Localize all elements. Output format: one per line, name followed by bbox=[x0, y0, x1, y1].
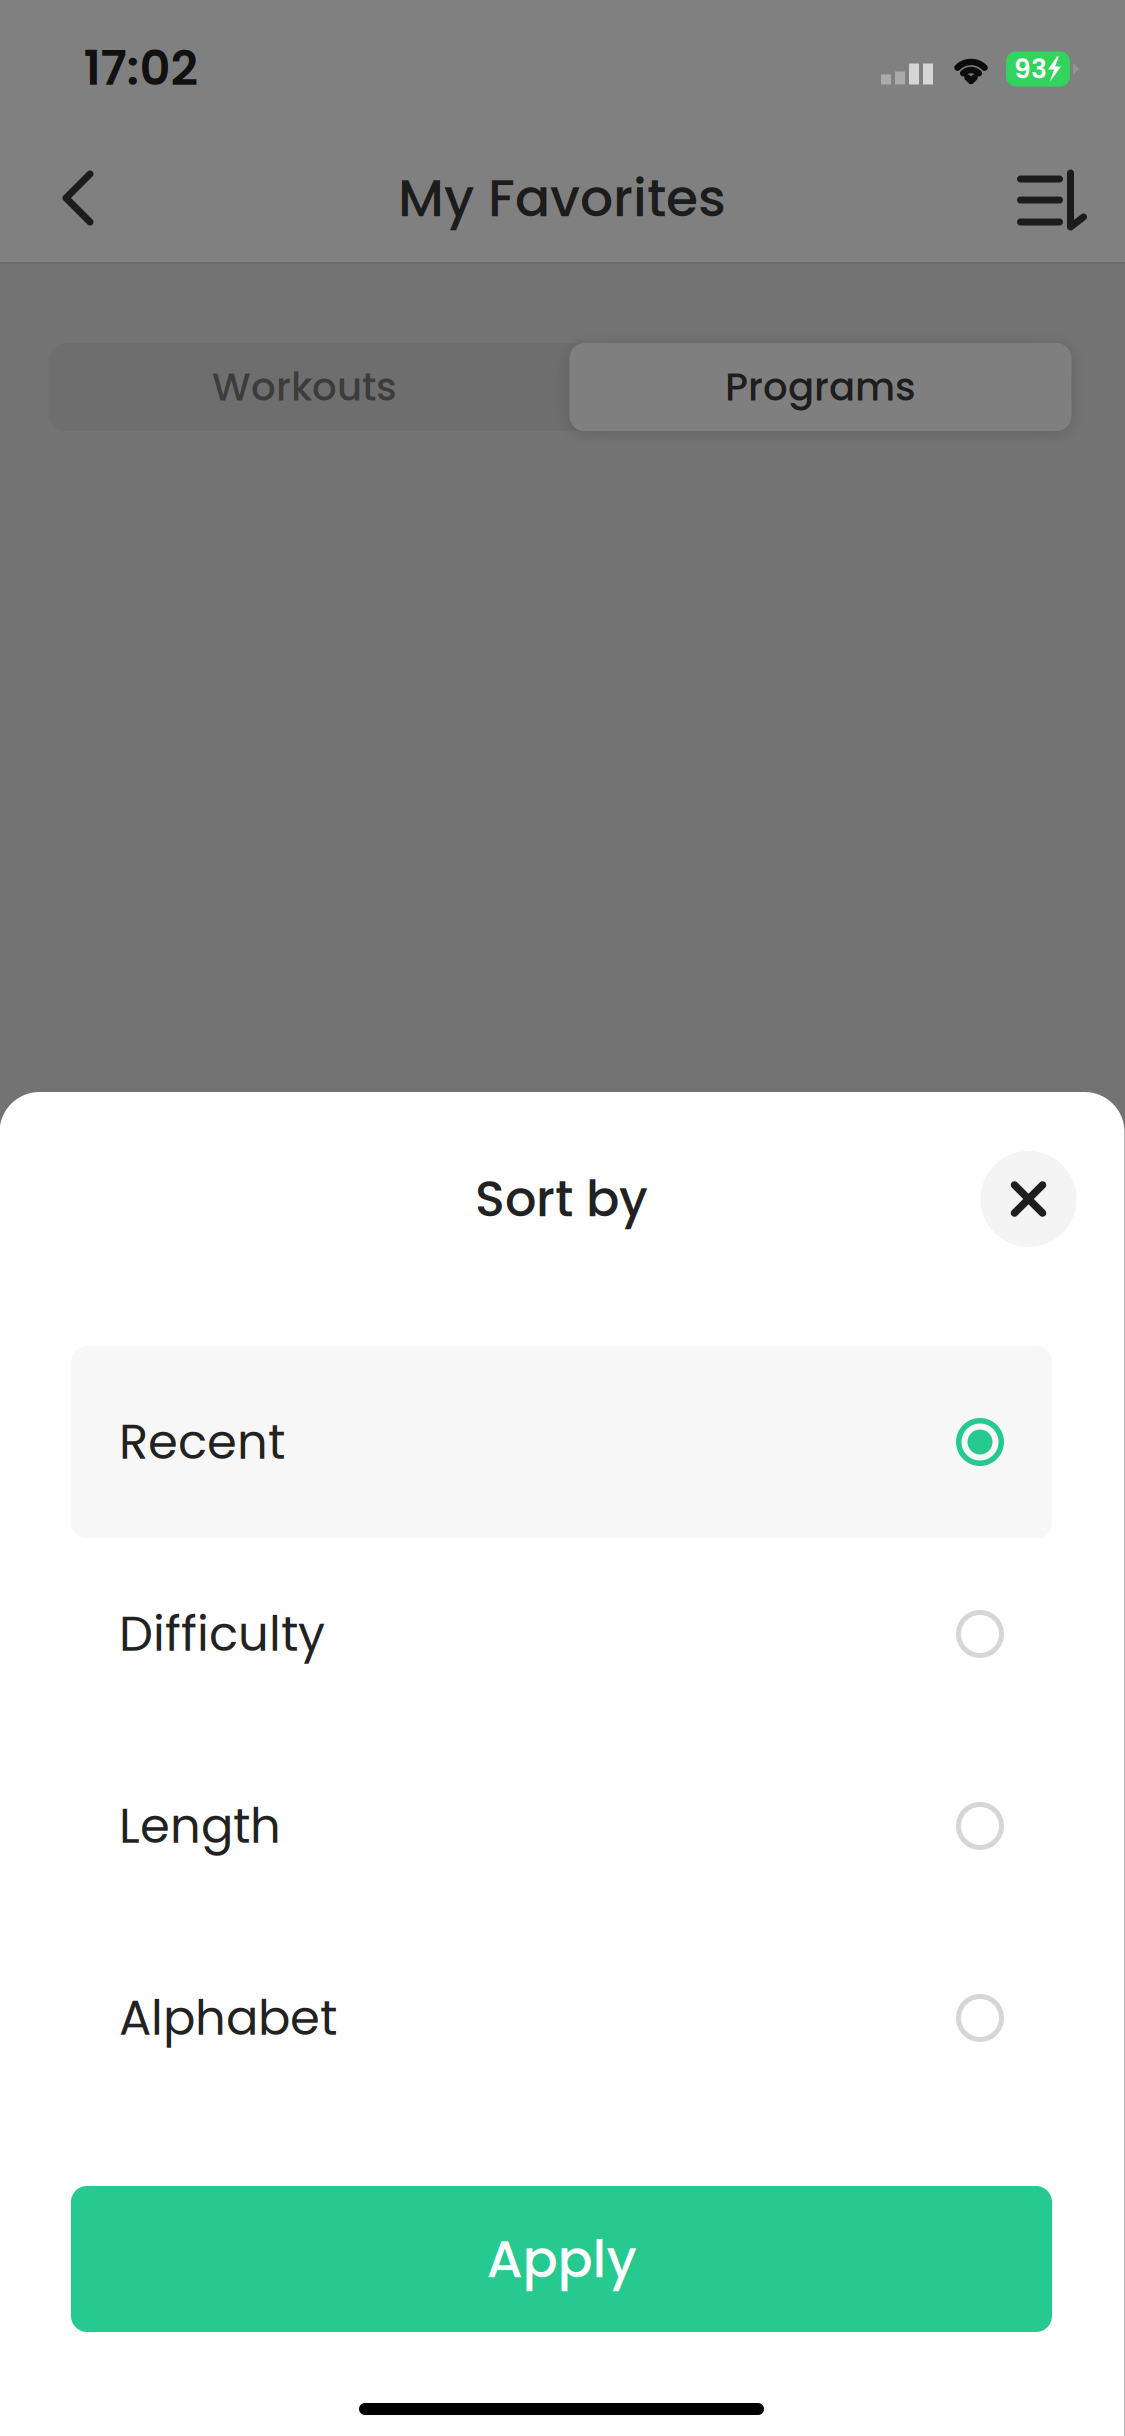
button[interactable]: Difficulty bbox=[71, 1538, 1052, 1730]
button[interactable]: Sort bbox=[1004, 153, 1100, 249]
staticText: Alphabet bbox=[119, 1984, 337, 2052]
button[interactable]: Recent bbox=[71, 1346, 1052, 1538]
staticText: Recent bbox=[119, 1408, 285, 1476]
staticText: Workouts bbox=[212, 360, 397, 414]
staticText: Difficulty bbox=[119, 1600, 325, 1668]
staticText: 93 bbox=[1014, 50, 1047, 88]
button[interactable]: Close bbox=[980, 1151, 1076, 1247]
staticText: 17:02 bbox=[83, 34, 198, 102]
button[interactable]: Alphabet bbox=[71, 1922, 1052, 2114]
staticText: Length bbox=[119, 1792, 281, 1860]
staticText: My Favorites bbox=[398, 162, 726, 234]
staticText: Apply bbox=[486, 2223, 636, 2295]
staticText: Programs bbox=[725, 360, 916, 414]
button[interactable]: Back bbox=[30, 150, 126, 246]
staticText: Sort by bbox=[475, 1164, 648, 1234]
button[interactable]: Length bbox=[71, 1730, 1052, 1922]
button[interactable]: Apply bbox=[71, 2186, 1052, 2332]
button[interactable]: Programs bbox=[569, 343, 1071, 431]
button[interactable]: Workouts bbox=[44, 343, 565, 431]
